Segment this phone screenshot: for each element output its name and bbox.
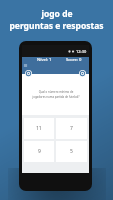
staticText: 12:30 (76, 49, 87, 54)
staticText: perguntas e respostas (9, 20, 104, 32)
staticText: 11 (36, 125, 42, 132)
staticText: 9 (38, 148, 41, 155)
button[interactable]: Hint (25, 70, 32, 77)
staticText: Qual o número mínimo de jogadores numa p… (32, 90, 80, 99)
button[interactable]: 11 (24, 118, 54, 139)
button[interactable]: 7 (56, 118, 87, 139)
staticText: 5 (70, 148, 73, 155)
staticText: 7 (70, 125, 73, 132)
button[interactable]: 5 (56, 141, 87, 162)
staticText: Nível: 1 (37, 57, 52, 63)
staticText: jogo de (41, 8, 73, 20)
staticText: Score: 0 (66, 57, 82, 63)
button[interactable]: Settings (79, 70, 86, 77)
button[interactable]: 9 (24, 141, 54, 162)
